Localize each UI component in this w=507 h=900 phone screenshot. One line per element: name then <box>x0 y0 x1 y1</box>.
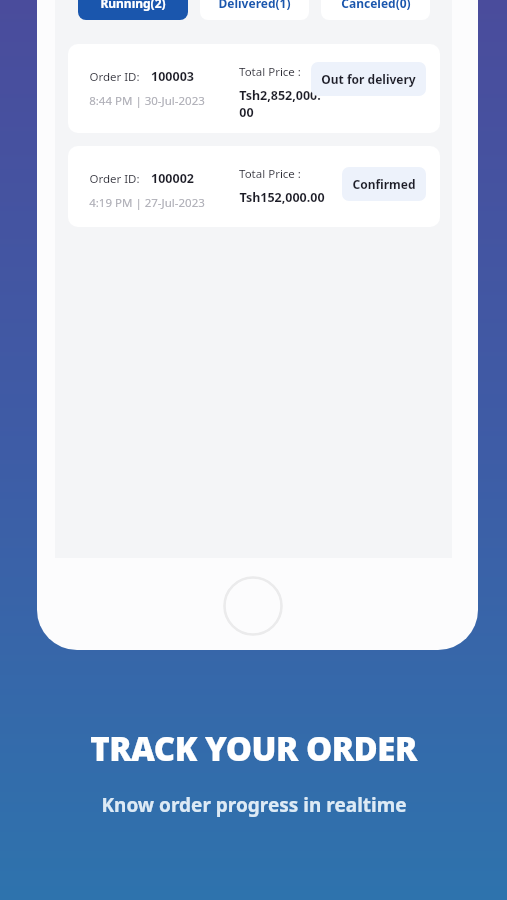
staticText: Confirmed <box>352 176 416 192</box>
staticText: Know order progress in realtime <box>101 792 407 818</box>
staticText: 00 <box>239 104 254 121</box>
staticText: Canceled(0) <box>341 0 411 11</box>
staticText: Total Price : <box>239 166 301 182</box>
staticText: Tsh152,000.00 <box>239 189 325 206</box>
button[interactable]: Running(2) <box>78 0 188 20</box>
staticText: TRACK YOUR ORDER <box>90 726 417 771</box>
button[interactable]: Order ID: <box>68 146 440 227</box>
button[interactable]: Order ID: <box>68 44 440 133</box>
staticText: Delivered(1) <box>218 0 291 11</box>
button[interactable]: Out for delivery <box>311 62 426 96</box>
staticText: 100003 <box>151 68 194 85</box>
staticText: 4:19 PM | 27-Jul-2023 <box>89 195 205 211</box>
staticText: Total Price : <box>239 64 301 80</box>
staticText: 100002 <box>151 170 194 187</box>
staticText: Running(2) <box>100 0 166 11</box>
staticText: Order ID: <box>89 171 140 187</box>
button[interactable]: Canceled(0) <box>321 0 430 20</box>
button[interactable]: Confirmed <box>342 167 426 201</box>
staticText: Tsh2,852,000. <box>239 87 321 104</box>
staticText: Order ID: <box>89 69 140 85</box>
staticText: 8:44 PM | 30-Jul-2023 <box>89 93 205 109</box>
button[interactable]: Delivered(1) <box>200 0 309 20</box>
button[interactable]: Home <box>223 576 283 636</box>
staticText: Out for delivery <box>321 71 416 87</box>
